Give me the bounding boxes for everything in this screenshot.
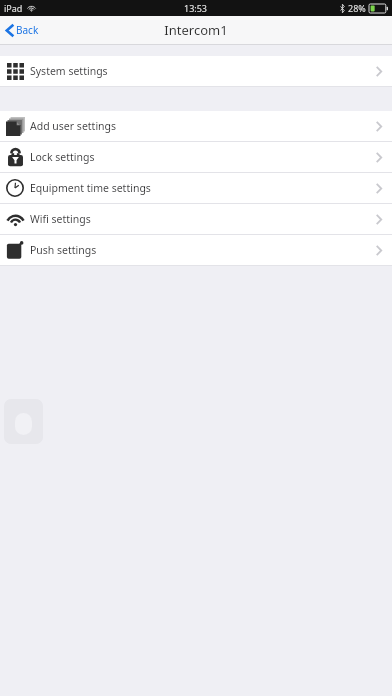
staticText: System settings <box>30 64 108 78</box>
staticText: Equipment time settings <box>30 181 151 195</box>
staticText: Lock settings <box>30 150 95 164</box>
staticText: iPad <box>4 2 23 14</box>
button[interactable]: System settings <box>0 56 392 86</box>
staticText: Push settings <box>30 243 97 257</box>
staticText: 13:53 <box>184 2 208 14</box>
staticText: 28% <box>348 2 366 14</box>
button[interactable]: Add user settings <box>0 111 392 141</box>
other: Push settings <box>6 241 24 260</box>
staticText: Add user settings <box>30 119 117 133</box>
button[interactable]: Push settings <box>0 235 392 265</box>
other: Wifi settings <box>6 212 25 227</box>
button[interactable]: Equipment time settings <box>0 173 392 203</box>
staticText: Back <box>16 23 39 37</box>
button[interactable]: Lock settings <box>0 142 392 172</box>
staticText: Intercom1 <box>164 21 228 39</box>
other: System settings <box>7 63 24 80</box>
other: Lock settings <box>7 148 24 167</box>
button[interactable]: Wifi settings <box>0 204 392 234</box>
other: Equipment time settings <box>6 179 24 197</box>
staticText: Wifi settings <box>30 212 91 226</box>
button[interactable]: Back <box>0 19 49 41</box>
other: Add user settings <box>6 117 25 136</box>
